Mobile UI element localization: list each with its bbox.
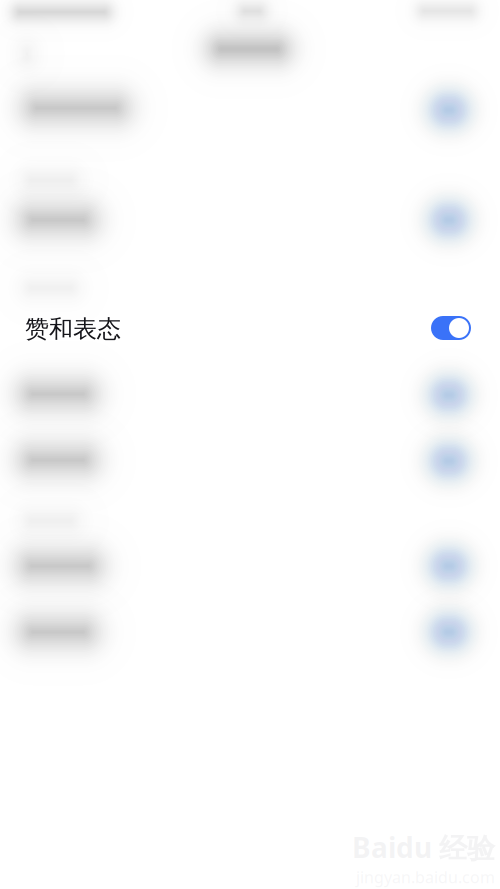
staticText: 赞和表态 — [25, 314, 121, 344]
button[interactable]: 赞和表态 开关 — [431, 316, 471, 340]
button[interactable]: 赞和表态 — [25, 315, 185, 343]
staticText: Baidu 经验 — [352, 828, 495, 866]
